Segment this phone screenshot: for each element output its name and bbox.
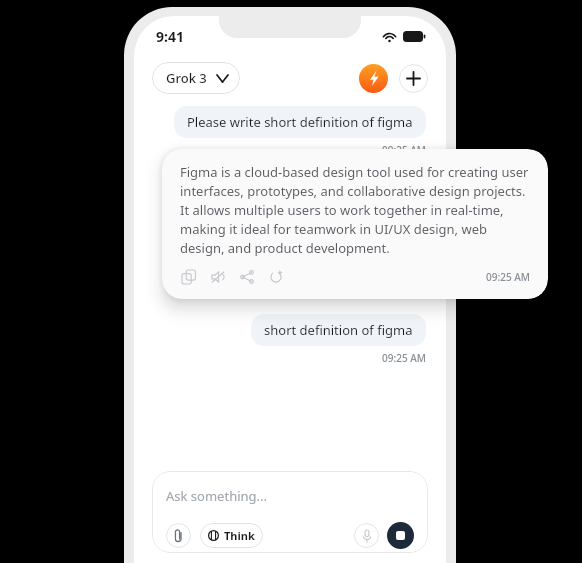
staticText: Figma is a cloud-based design tool used … — [180, 163, 530, 257]
button[interactable]: Regenerate — [267, 268, 285, 286]
button[interactable]: Mute — [209, 268, 227, 286]
button[interactable]: Figma is a cloud-based design tool used … — [162, 149, 548, 299]
button[interactable]: Attach file — [166, 523, 191, 548]
button[interactable]: New chat — [399, 64, 428, 93]
staticText: 09:25 AM — [382, 351, 426, 365]
button[interactable]: Share — [238, 268, 256, 286]
staticText: short definition of figma — [264, 321, 413, 339]
staticText: Ask something... — [166, 487, 267, 505]
button[interactable]: Voice input — [354, 523, 379, 548]
staticText: Please write short definition of figma — [187, 113, 413, 131]
button[interactable]: Boost — [359, 64, 388, 93]
button[interactable]: Copy — [180, 268, 198, 286]
staticText: Think — [224, 528, 255, 543]
button[interactable]: Please write short definition of figma — [174, 106, 426, 138]
staticText: 09:25 AM — [486, 270, 530, 284]
button[interactable]: Stop — [387, 522, 414, 549]
staticText: 9:41 — [156, 27, 184, 46]
button[interactable]: Think — [200, 523, 263, 548]
button[interactable]: Grok 3 — [152, 62, 240, 94]
staticText: 09:25 AM — [382, 143, 426, 157]
staticText: Grok 3 — [166, 69, 207, 87]
button[interactable]: short definition of figma — [251, 314, 426, 346]
button[interactable]: Ask something... — [152, 471, 428, 553]
